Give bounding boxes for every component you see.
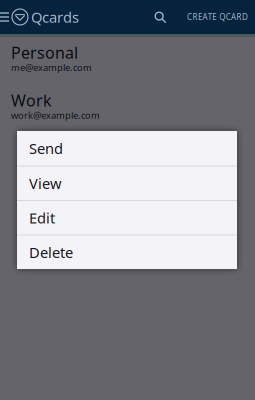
button[interactable]: Delete — [17, 234, 237, 269]
button[interactable]: View — [17, 165, 237, 200]
button[interactable]: Search — [147, 0, 173, 34]
button[interactable]: Send — [17, 131, 237, 165]
staticText: CREATE QCARD — [187, 12, 248, 22]
button[interactable]: Menu — [0, 12, 12, 22]
button[interactable]: Personal — [0, 34, 255, 82]
staticText: Qcards — [31, 7, 79, 27]
staticText: Personal — [11, 42, 78, 63]
button[interactable]: Work — [0, 82, 255, 129]
staticText: work@example.com — [11, 109, 100, 121]
button[interactable]: Edit — [17, 200, 237, 234]
button[interactable]: Qcards — [12, 0, 79, 34]
staticText: Send — [29, 138, 63, 158]
staticText: View — [29, 173, 62, 193]
staticText: me@example.com — [11, 61, 92, 74]
staticText: Work — [11, 90, 52, 111]
staticText: Delete — [29, 242, 73, 262]
staticText: Edit — [29, 208, 55, 227]
button[interactable]: CREATE QCARD — [187, 0, 248, 34]
